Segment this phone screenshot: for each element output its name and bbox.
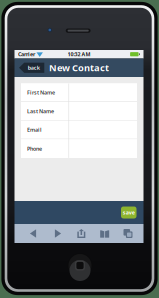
- staticText: Phone: [27, 145, 42, 152]
- button[interactable]: Last Name: [21, 102, 137, 121]
- staticText: Carrier: [18, 51, 35, 58]
- button[interactable]: Forward: [51, 227, 64, 240]
- staticText: back: [28, 64, 40, 71]
- staticText: Email: [27, 126, 42, 133]
- button[interactable]: Phone: [21, 139, 137, 158]
- staticText: save: [123, 209, 135, 216]
- button[interactable]: First Name: [21, 83, 137, 102]
- staticText: Last Name: [27, 108, 54, 115]
- button[interactable]: save: [121, 206, 136, 218]
- staticText: First Name: [27, 89, 55, 96]
- button[interactable]: Back: [26, 227, 39, 240]
- button[interactable]: Bookmarks: [98, 227, 111, 240]
- staticText: New Contact: [49, 62, 109, 74]
- button[interactable]: back: [19, 63, 44, 73]
- button[interactable]: Share: [75, 227, 88, 240]
- button[interactable]: Email: [21, 121, 137, 139]
- staticText: 10:32 AM: [67, 51, 90, 58]
- button[interactable]: Tabs: [121, 227, 134, 240]
